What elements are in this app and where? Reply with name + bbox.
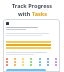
staticText: Track Progress	[0, 2, 64, 9]
staticText: Tasks	[32, 10, 47, 17]
staticText: with	[18, 10, 32, 17]
button[interactable]: Continue	[6, 69, 46, 72]
